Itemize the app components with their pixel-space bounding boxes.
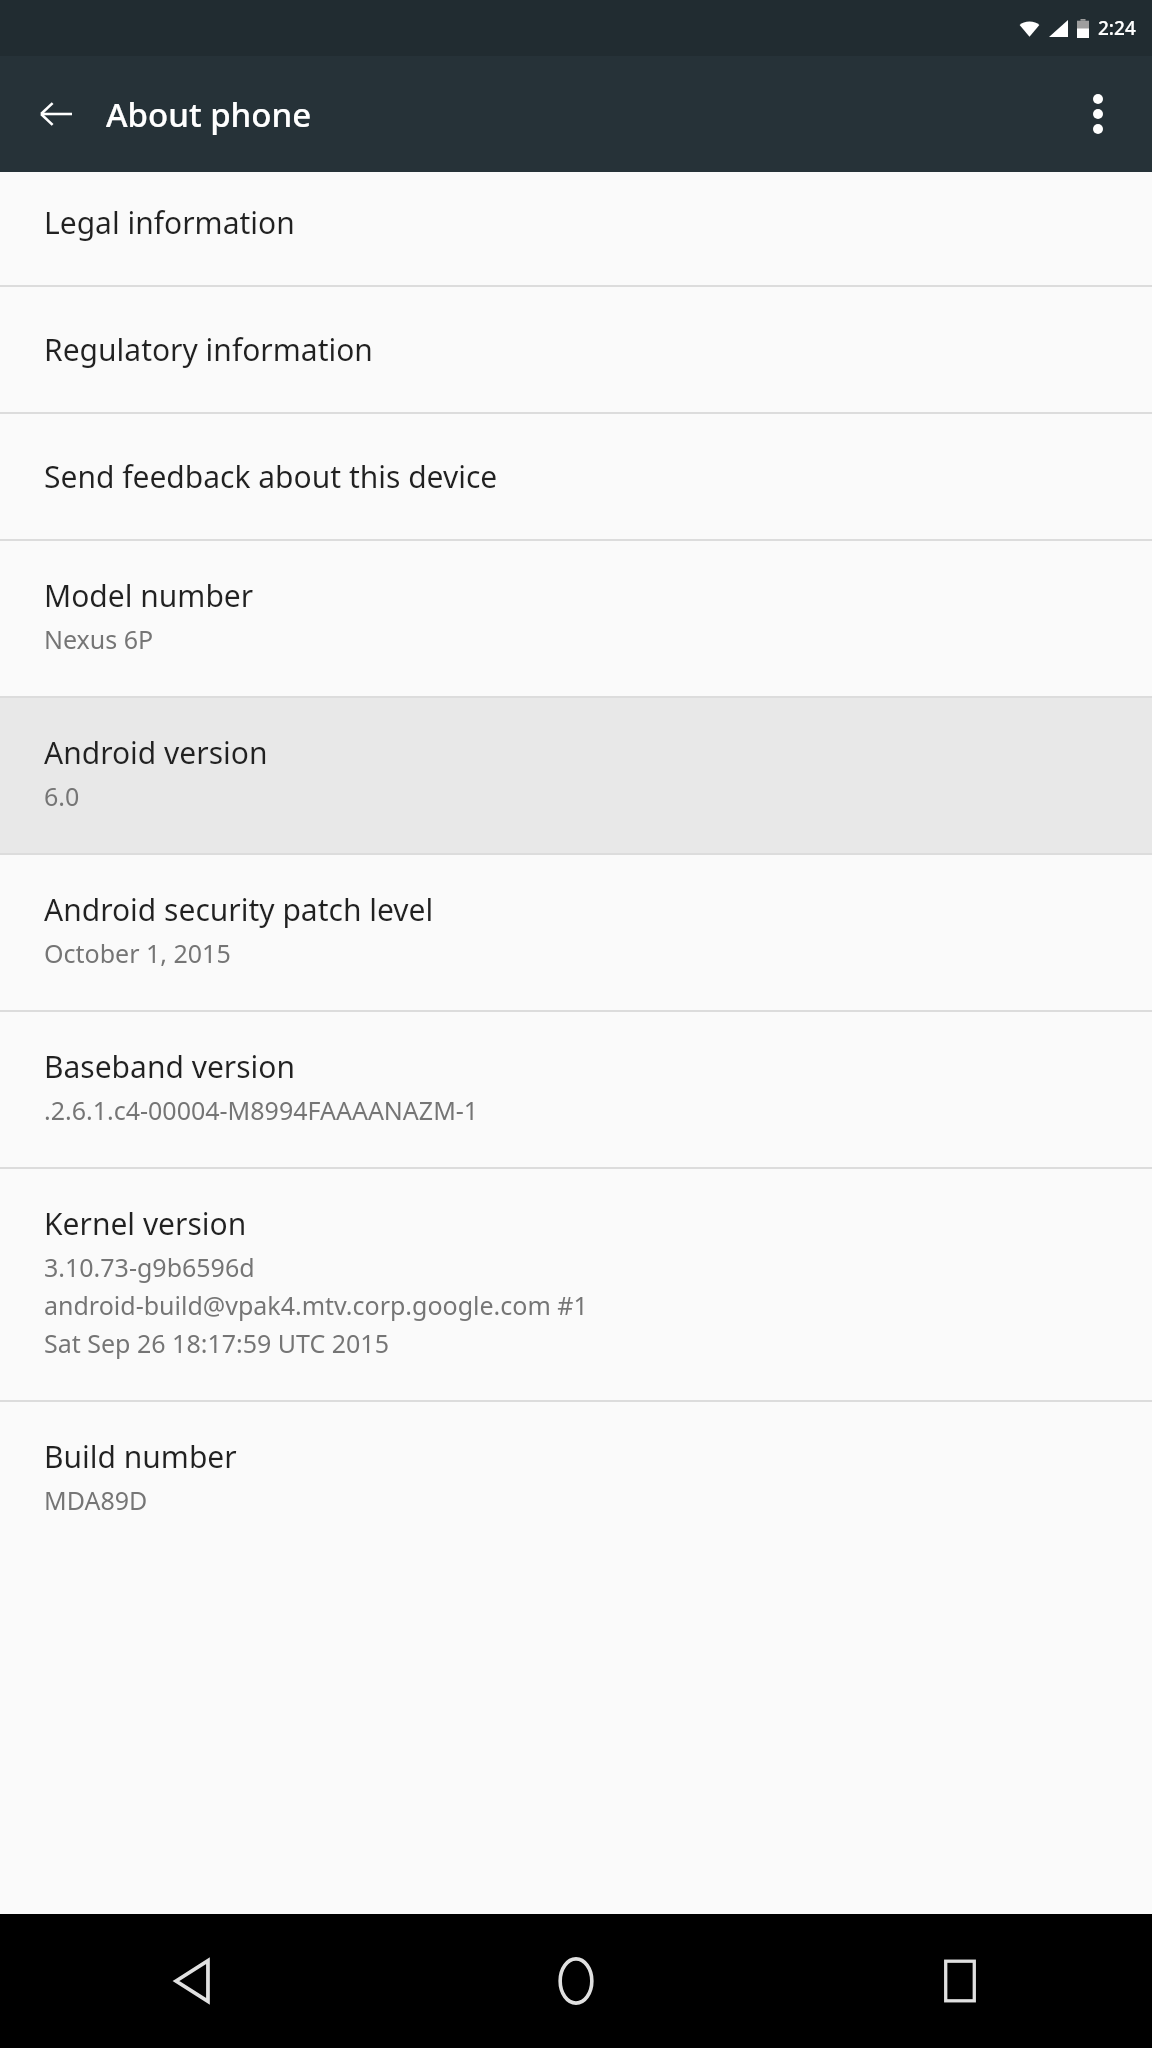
staticText: android-build@vpak4.mtv.corp.google.com … — [44, 1288, 588, 1322]
staticText: October 1, 2015 — [44, 936, 231, 970]
button[interactable]: Model number — [0, 541, 1152, 696]
staticText: 6.0 — [44, 779, 80, 813]
staticText: Baseband version — [44, 1046, 296, 1087]
staticText: Build number — [44, 1436, 237, 1477]
button[interactable]: More options — [1062, 78, 1134, 150]
staticText: Sat Sep 26 18:17:59 UTC 2015 — [44, 1326, 389, 1360]
staticText: Regulatory information — [44, 329, 373, 370]
staticText: Android version — [44, 732, 268, 773]
staticText: .2.6.1.c4-00004-M8994FAAAANAZM-1 — [44, 1093, 479, 1127]
staticText: About phone — [106, 92, 312, 137]
staticText: 2:24 — [1098, 15, 1136, 41]
button[interactable]: Back — [20, 78, 92, 150]
staticText: Model number — [44, 575, 254, 616]
button[interactable]: Kernel version — [0, 1169, 1152, 1400]
button[interactable]: Android version — [0, 698, 1152, 853]
staticText: Nexus 6P — [44, 622, 154, 656]
button[interactable]: Back — [0, 1914, 384, 2048]
staticText: Android security patch level — [44, 889, 434, 930]
button[interactable]: Send feedback about this device — [0, 414, 1152, 539]
staticText: Send feedback about this device — [44, 456, 498, 497]
button[interactable]: Baseband version — [0, 1012, 1152, 1167]
button[interactable]: Regulatory information — [0, 287, 1152, 412]
button[interactable]: Home — [384, 1914, 768, 2048]
staticText: Legal information — [44, 202, 295, 243]
button[interactable]: Legal information — [0, 172, 1152, 285]
button[interactable]: Android security patch level — [0, 855, 1152, 1010]
button[interactable]: Build number — [0, 1402, 1152, 1557]
button[interactable]: Recents — [768, 1914, 1152, 2048]
staticText: 3.10.73-g9b6596d — [44, 1250, 255, 1284]
staticText: MDA89D — [44, 1483, 148, 1517]
staticText: Kernel version — [44, 1203, 247, 1244]
